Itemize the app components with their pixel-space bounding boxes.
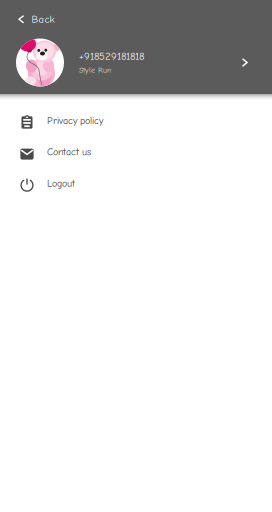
staticText: Contact us [47, 146, 91, 158]
button[interactable]: Contact us [0, 136, 272, 168]
staticText: Privacy policy [47, 115, 103, 126]
button[interactable]: Privacy policy [0, 105, 272, 136]
staticText: Style Run [79, 65, 111, 75]
staticText: Back [32, 13, 55, 25]
button[interactable]: Logout [0, 168, 272, 199]
staticText: Logout [47, 178, 75, 189]
staticText: +918529181818 [79, 50, 144, 63]
button[interactable]: Back [0, 0, 272, 38]
button[interactable]: +918529181818 [0, 38, 272, 86]
